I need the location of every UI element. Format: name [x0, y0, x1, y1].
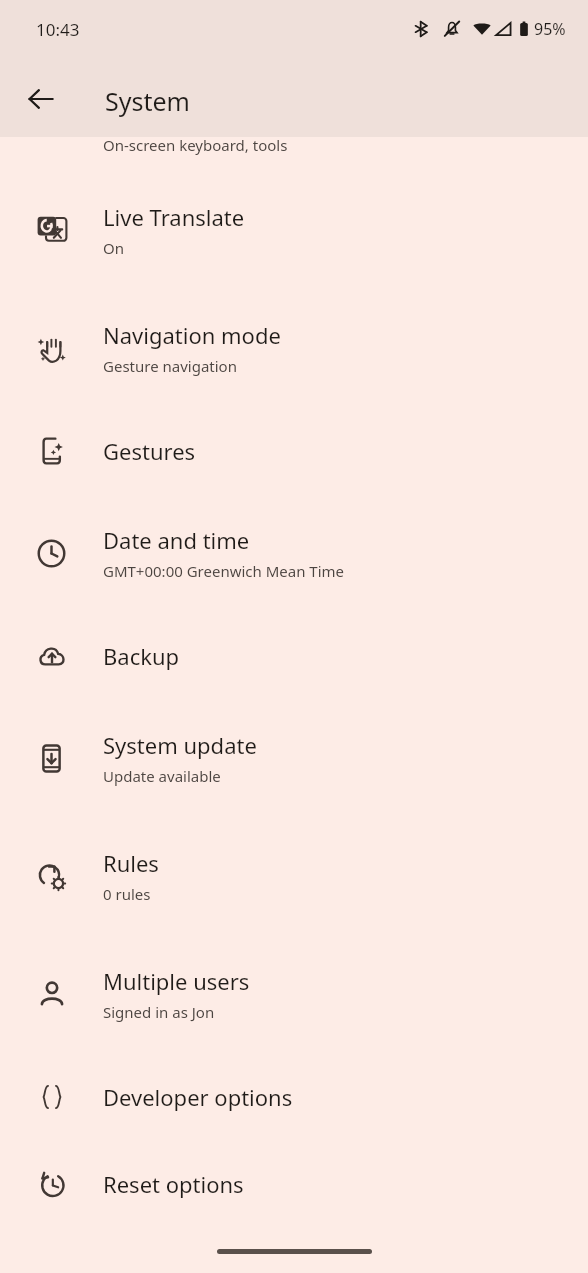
staticText: System update	[103, 730, 257, 760]
staticText: Signed in as Jon	[103, 1002, 215, 1022]
button[interactable]: Gestures	[0, 407, 588, 494]
button[interactable]: Live Translate	[0, 171, 588, 289]
staticText: Reset options	[103, 1169, 244, 1199]
button[interactable]: Developer options	[0, 1053, 588, 1140]
staticText: Backup	[103, 641, 180, 671]
staticText: Date and time	[103, 525, 250, 555]
button[interactable]: On-screen keyboard, tools	[0, 137, 588, 171]
staticText: Gestures	[103, 436, 196, 466]
staticText: Update available	[103, 766, 221, 786]
staticText: System	[105, 84, 190, 118]
staticText: On-screen keyboard, tools	[103, 135, 288, 155]
button[interactable]: Rules	[0, 817, 588, 935]
staticText: Gesture navigation	[103, 356, 237, 376]
button[interactable]: Reset options	[0, 1140, 588, 1227]
button[interactable]: System update	[0, 699, 588, 817]
button[interactable]: Backup	[0, 612, 588, 699]
staticText: 95%	[534, 18, 566, 40]
button[interactable]: Back	[17, 75, 65, 123]
staticText: Rules	[103, 848, 159, 878]
staticText: 10:43	[36, 18, 80, 41]
staticText: Developer options	[103, 1082, 293, 1112]
staticText: On	[103, 238, 124, 258]
button[interactable]: Date and time	[0, 494, 588, 612]
button[interactable]: Multiple users	[0, 935, 588, 1053]
staticText: Navigation mode	[103, 320, 281, 350]
button[interactable]: Navigation mode	[0, 289, 588, 407]
staticText: GMT+00:00 Greenwich Mean Time	[103, 561, 345, 581]
staticText: 0 rules	[103, 884, 151, 904]
staticText: Live Translate	[103, 202, 245, 232]
staticText: Multiple users	[103, 966, 250, 996]
